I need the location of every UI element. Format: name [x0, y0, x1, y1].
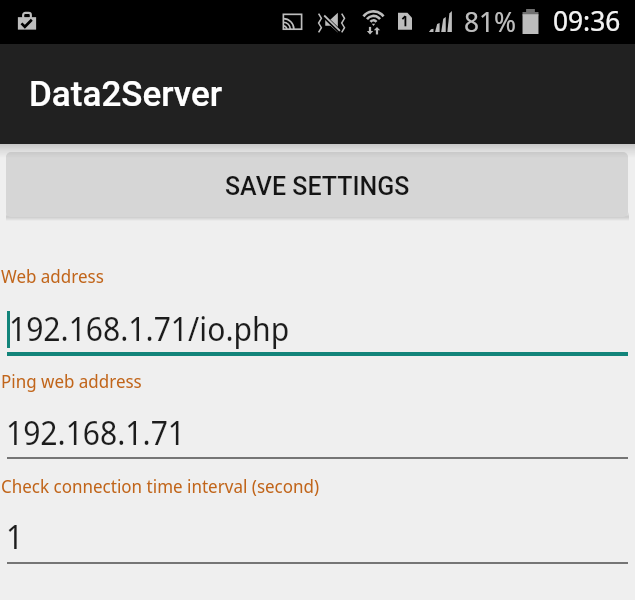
staticText: SAVE SETTINGS	[225, 172, 410, 201]
button[interactable]: SAVE SETTINGS	[6, 152, 628, 217]
staticText: Data2Server	[29, 74, 223, 115]
staticText: Check connection time interval (second)	[1, 474, 320, 499]
staticText: 09:36	[553, 1, 621, 39]
staticText: Web address	[1, 264, 104, 289]
staticText: 192.168.1.71	[6, 411, 186, 455]
staticText: 81%	[464, 2, 517, 40]
staticText: 1	[6, 515, 24, 559]
staticText: 192.168.1.71/io.php	[9, 307, 290, 351]
staticText: Ping web address	[1, 369, 142, 394]
